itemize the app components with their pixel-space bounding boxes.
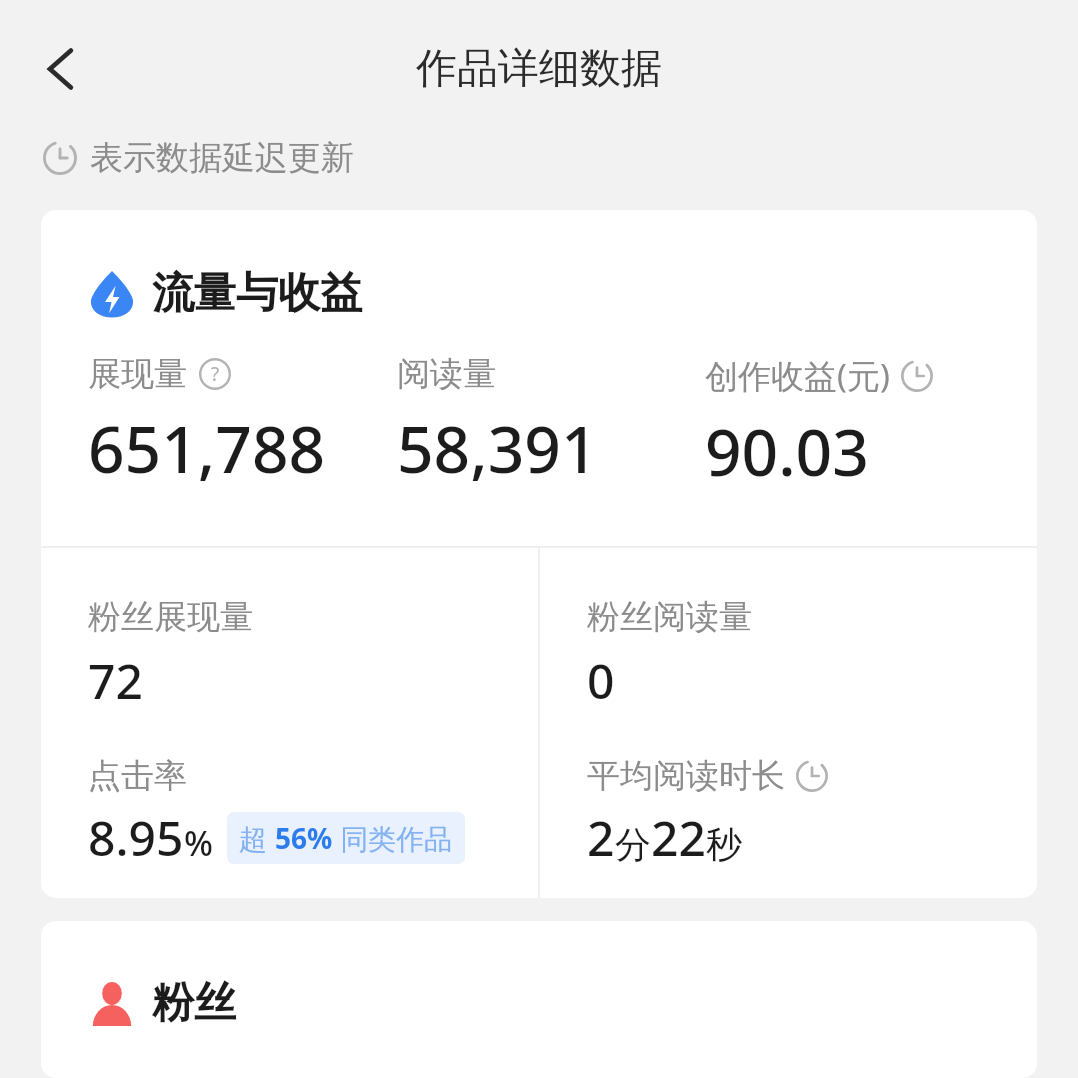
staticText: 粉丝: [152, 977, 236, 1030]
staticText: 阅读量: [397, 353, 496, 395]
staticText: 点击率: [88, 755, 187, 797]
staticText: 作品详细数据: [416, 43, 662, 95]
staticText: 平均阅读时长: [587, 755, 785, 797]
button[interactable]: 超: [227, 812, 465, 864]
button[interactable]: 流量与收益: [41, 210, 1037, 898]
staticText: 72: [88, 648, 143, 713]
staticText: 同类作品: [333, 819, 453, 857]
staticText: %: [184, 820, 213, 866]
staticText: 创作收益(元): [705, 353, 890, 398]
button[interactable]: Back: [18, 27, 102, 111]
staticText: 90.03: [705, 408, 869, 495]
staticText: 22: [651, 805, 706, 870]
staticText: 651,788: [88, 405, 326, 492]
staticText: 0: [587, 648, 615, 713]
staticText: 表示数据延迟更新: [90, 137, 354, 179]
button[interactable]: 粉丝: [41, 921, 1037, 1078]
staticText: 粉丝展现量: [88, 596, 253, 638]
staticText: ?: [211, 361, 220, 387]
staticText: 秒: [706, 822, 742, 867]
staticText: 8.95: [88, 805, 184, 870]
staticText: 58,391: [397, 405, 598, 492]
staticText: 2: [587, 805, 615, 870]
staticText: 56%: [275, 819, 333, 857]
staticText: 超: [239, 819, 275, 857]
staticText: 粉丝阅读量: [587, 596, 752, 638]
staticText: 展现量: [88, 353, 187, 395]
staticText: 分: [615, 822, 651, 867]
staticText: 流量与收益: [152, 267, 362, 320]
